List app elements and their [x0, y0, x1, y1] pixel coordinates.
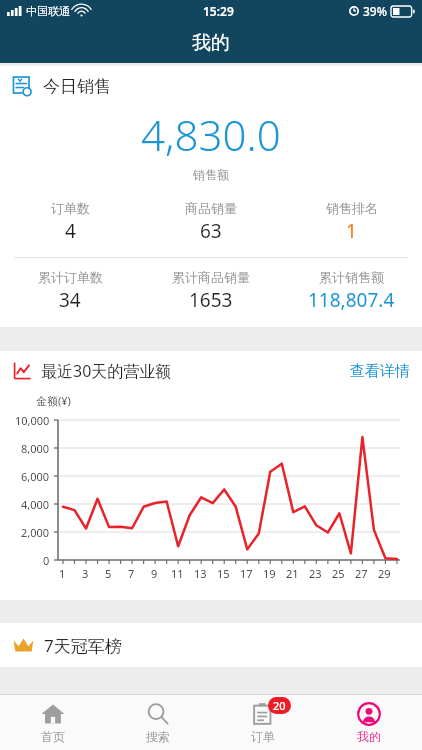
button[interactable]: 订单数	[0, 200, 140, 244]
staticText: 4,000	[21, 497, 50, 512]
staticText: 订单	[251, 729, 275, 744]
staticText: 1	[346, 218, 357, 244]
other: 我的	[357, 702, 381, 726]
button[interactable]: 订单	[210, 695, 316, 750]
staticText: 6,000	[21, 469, 50, 484]
staticText: 15	[217, 566, 230, 581]
button[interactable]: 商品销量	[140, 200, 281, 244]
staticText: 15:29	[203, 3, 234, 19]
staticText: 63	[200, 218, 222, 244]
staticText: 4	[65, 218, 76, 244]
staticText: 21	[286, 566, 299, 581]
staticText: 累计商品销量	[172, 269, 250, 285]
staticText: 7	[128, 566, 135, 581]
staticText: 今日销售	[43, 76, 111, 97]
staticText: 3	[82, 566, 89, 581]
staticText: 中国联通	[26, 4, 70, 18]
staticText: 20	[273, 698, 286, 713]
staticText: 8,000	[21, 441, 50, 456]
staticText: 订单数	[51, 200, 90, 216]
button[interactable]: 查看详情	[350, 362, 410, 381]
button[interactable]: 累计商品销量	[140, 269, 281, 313]
staticText: 累计销售额	[319, 269, 384, 285]
staticText: 查看详情	[350, 362, 410, 381]
staticText: 累计订单数	[38, 269, 103, 285]
staticText: 23	[309, 566, 322, 581]
button[interactable]: 首页	[0, 695, 105, 750]
staticText: 29	[378, 566, 391, 581]
button[interactable]: 销售排名	[281, 200, 422, 244]
button[interactable]: 我的	[316, 695, 422, 750]
staticText: 10,000	[15, 413, 50, 428]
staticText: 0	[43, 553, 50, 568]
staticText: 39%	[363, 3, 387, 19]
staticText: 我的	[357, 729, 381, 744]
staticText: 34	[59, 287, 81, 313]
button[interactable]: 累计订单数	[0, 269, 140, 313]
staticText: 1	[59, 566, 66, 581]
staticText: 25	[332, 566, 345, 581]
staticText: 11	[171, 566, 184, 581]
button[interactable]: 累计销售额	[281, 269, 422, 313]
staticText: 5	[105, 566, 112, 581]
staticText: 118,807.4	[308, 287, 395, 313]
staticText: 1653	[189, 287, 233, 313]
button[interactable]: 搜索	[105, 695, 210, 750]
staticText: 首页	[41, 729, 65, 744]
other: 首页	[41, 702, 65, 726]
staticText: 商品销量	[185, 200, 237, 216]
staticText: 27	[355, 566, 368, 581]
staticText: 7天冠军榜	[44, 634, 122, 657]
other: 搜索	[146, 702, 170, 726]
other: 订单	[251, 702, 275, 726]
staticText: 19	[263, 566, 276, 581]
staticText: 4,830.0	[141, 106, 281, 163]
button[interactable]: 今日销售	[0, 66, 422, 106]
staticText: 9	[151, 566, 158, 581]
button[interactable]: 7天冠军榜	[0, 623, 422, 667]
staticText: 17	[240, 566, 253, 581]
staticText: 销售额	[193, 167, 229, 182]
staticText: 最近30天的营业额	[41, 360, 172, 382]
staticText: 13	[194, 566, 207, 581]
staticText: 金额(¥)	[36, 393, 71, 408]
staticText: 我的	[192, 31, 230, 55]
staticText: 搜索	[146, 729, 170, 744]
staticText: 销售排名	[326, 200, 378, 216]
staticText: 2,000	[21, 525, 50, 540]
button[interactable]: 最近30天的营业额	[0, 351, 422, 391]
